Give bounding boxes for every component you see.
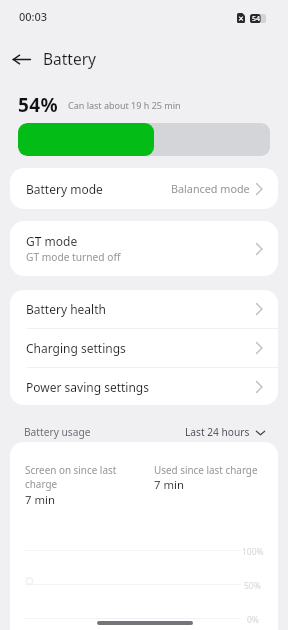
staticText: Last 24 hours <box>185 425 250 439</box>
staticText: Screen on since last charge <box>25 463 137 491</box>
staticText: Used since last charge <box>154 463 258 476</box>
staticText: Battery <box>43 48 97 69</box>
button[interactable]: Battery health <box>10 290 278 328</box>
staticText: 54 <box>252 14 261 24</box>
staticText: Power saving settings <box>26 379 149 395</box>
staticText: Balanced mode <box>171 181 250 196</box>
button[interactable]: Power saving settings <box>10 368 278 405</box>
staticText: 7 min <box>25 492 55 507</box>
staticText: Battery health <box>26 301 106 317</box>
staticText: 54% <box>18 92 59 118</box>
button[interactable]: Last 24 hours <box>185 425 266 439</box>
staticText: Charging settings <box>26 340 126 356</box>
button[interactable]: Battery mode <box>10 168 278 209</box>
staticText: Can last about 19 h 25 min <box>68 99 181 111</box>
staticText: GT mode turned off <box>26 250 121 264</box>
staticText: GT mode <box>26 233 78 249</box>
button[interactable]: Charging settings <box>10 329 278 367</box>
staticText: 100% <box>242 546 264 558</box>
staticText: 0% <box>247 614 259 626</box>
button[interactable]: GT mode <box>10 221 278 276</box>
staticText: Battery usage <box>24 425 91 439</box>
button[interactable]: Back <box>6 44 36 74</box>
staticText: Battery mode <box>26 181 103 197</box>
staticText: 7 min <box>154 477 184 492</box>
staticText: 00:03 <box>19 9 48 24</box>
staticText: 50% <box>244 580 261 592</box>
